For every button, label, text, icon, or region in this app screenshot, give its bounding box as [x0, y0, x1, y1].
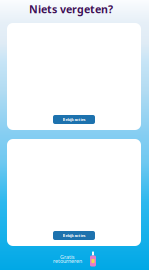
button[interactable]: Bekijk acties [53, 231, 95, 240]
button[interactable]: Bekijk acties [53, 115, 95, 124]
staticText: retourneren [53, 257, 82, 265]
staticText: Niets vergeten? [29, 2, 113, 16]
staticText: Gratis [60, 253, 75, 261]
staticText: Bekijk acties [62, 233, 85, 238]
staticText: Bekijk acties [62, 117, 85, 122]
